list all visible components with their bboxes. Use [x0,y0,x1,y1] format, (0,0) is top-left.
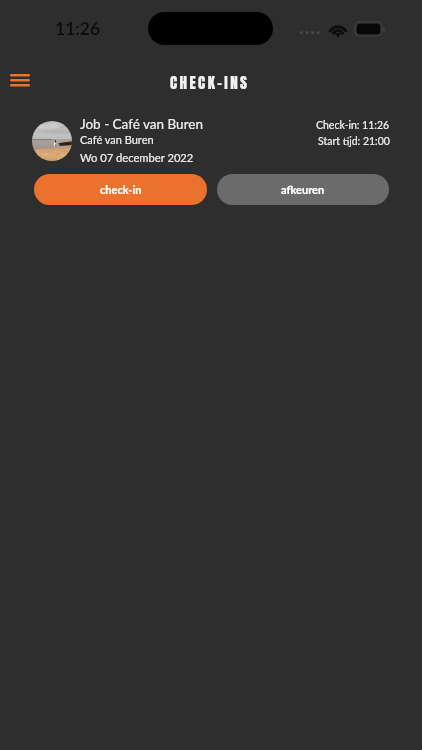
staticText: Café van Buren [80,133,154,146]
staticText: Check-in: 11:26 [316,119,390,132]
staticText: Start tijd: 21:00 [318,135,390,148]
staticText: CHECK-INS [170,71,250,94]
staticText: check-in [100,183,142,196]
staticText: Job - Café van Buren [80,116,203,132]
button[interactable]: afkeuren [217,174,389,205]
button[interactable]: Menu [1,61,39,99]
staticText: Wo 07 december 2022 [80,151,194,164]
staticText: afkeuren [281,183,325,196]
button[interactable]: check-in [34,174,207,205]
staticText: 11:26 [55,18,101,39]
